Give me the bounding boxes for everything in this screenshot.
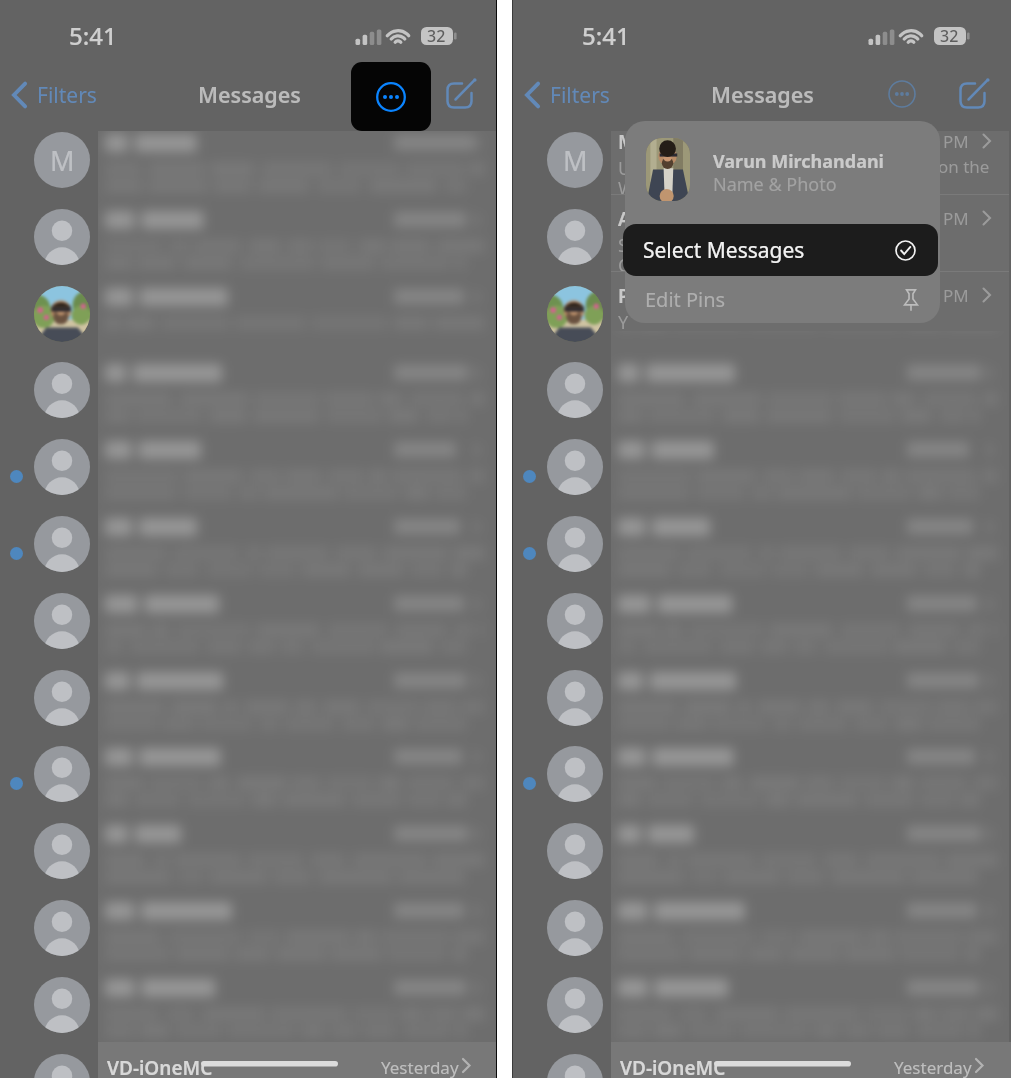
button[interactable]: Edit Pins xyxy=(625,276,940,323)
button[interactable] xyxy=(0,899,496,976)
staticText: Y xyxy=(618,310,629,335)
staticText: Varun Mirchandani xyxy=(713,149,884,174)
staticText: S xyxy=(618,233,628,258)
button[interactable] xyxy=(513,976,1011,1053)
staticText: U xyxy=(618,156,632,181)
staticText: Edit Pins xyxy=(645,286,726,313)
button[interactable]: Compose xyxy=(445,78,477,110)
staticText: P xyxy=(618,283,630,309)
button[interactable] xyxy=(0,822,496,899)
staticText: 32 xyxy=(427,25,446,47)
staticText: Select Messages xyxy=(643,236,805,265)
button[interactable] xyxy=(0,285,496,362)
staticText: on the xyxy=(938,155,990,178)
button[interactable] xyxy=(0,1053,496,1078)
button[interactable] xyxy=(513,361,1011,438)
staticText: PM xyxy=(943,130,969,153)
button[interactable]: Filters xyxy=(10,72,97,118)
button[interactable] xyxy=(513,745,1011,822)
button[interactable] xyxy=(513,285,1011,362)
staticText: PM xyxy=(943,284,969,307)
button[interactable]: M xyxy=(513,131,1011,208)
button[interactable] xyxy=(0,438,496,515)
button[interactable] xyxy=(0,208,496,285)
button[interactable] xyxy=(513,592,1011,669)
staticText: M xyxy=(563,142,588,179)
staticText: PM xyxy=(943,207,969,230)
staticText: M xyxy=(618,129,636,155)
button[interactable] xyxy=(0,361,496,438)
button[interactable]: VD-iOneMC conversation, Yesterday xyxy=(98,1042,496,1078)
button[interactable] xyxy=(513,1053,1011,1078)
staticText: VD-iOneMC xyxy=(107,1055,213,1078)
button[interactable]: More options xyxy=(351,62,431,131)
button[interactable]: M xyxy=(0,131,496,208)
staticText: Filters xyxy=(550,81,610,110)
button[interactable]: More options xyxy=(888,80,916,108)
button[interactable]: Varun Mirchandani xyxy=(625,121,940,222)
button[interactable] xyxy=(513,822,1011,899)
button[interactable] xyxy=(0,592,496,669)
button[interactable]: Select Messages xyxy=(623,224,938,276)
staticText: Yesterday xyxy=(894,1056,972,1078)
button[interactable] xyxy=(513,899,1011,976)
staticText: W xyxy=(618,176,635,201)
staticText: C xyxy=(618,253,630,278)
staticText: M xyxy=(50,142,75,179)
button[interactable] xyxy=(0,515,496,592)
staticText: 32 xyxy=(940,25,959,47)
staticText: Messages xyxy=(198,80,301,109)
staticText: Name & Photo xyxy=(713,172,837,197)
button[interactable]: Filters xyxy=(523,72,610,118)
button[interactable]: Compose xyxy=(958,78,990,110)
staticText: Filters xyxy=(37,81,97,110)
staticText: Messages xyxy=(711,80,814,109)
button[interactable]: VD-iOneMC conversation, Yesterday xyxy=(611,1042,1011,1078)
button[interactable] xyxy=(513,669,1011,746)
button[interactable] xyxy=(513,208,1011,285)
staticText: A xyxy=(618,206,631,232)
staticText: VD-iOneMC xyxy=(620,1055,726,1078)
button[interactable] xyxy=(0,745,496,822)
button[interactable] xyxy=(513,515,1011,592)
staticText: 5:41 xyxy=(582,19,630,52)
staticText: Yesterday xyxy=(381,1056,459,1078)
staticText: 5:41 xyxy=(69,19,117,52)
button[interactable] xyxy=(0,669,496,746)
button[interactable] xyxy=(0,976,496,1053)
button[interactable] xyxy=(513,438,1011,515)
